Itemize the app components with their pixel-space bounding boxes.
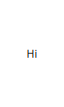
- staticText: Hi: [26, 46, 37, 61]
